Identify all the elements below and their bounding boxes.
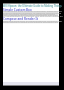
staticText: Duis aute irure dolor in reprehenderit i… (3, 20, 63, 23)
staticText: nisi ut aliquip ex ea commodo consequat … (3, 14, 63, 17)
staticText: eiusmod tempor incididunt ut labore et d… (3, 12, 63, 15)
staticText: cillum dolore eu fugiat nulla pariatur e… (3, 21, 59, 24)
button[interactable]: Article page (0, 0, 64, 90)
staticText: Lorem ipsum dolor sit amet consectetur a… (3, 10, 63, 13)
staticText: enim ad minim veniam quis nostrud exerci… (3, 13, 63, 16)
staticText: Simple Custom Box (3, 8, 32, 12)
staticText: Will Hipson: the Ultimate Guide to Makin… (3, 4, 63, 7)
staticText: in reprehenderit in voluptate velit esse… (3, 15, 63, 18)
staticText: Compose and Render It (3, 17, 38, 21)
